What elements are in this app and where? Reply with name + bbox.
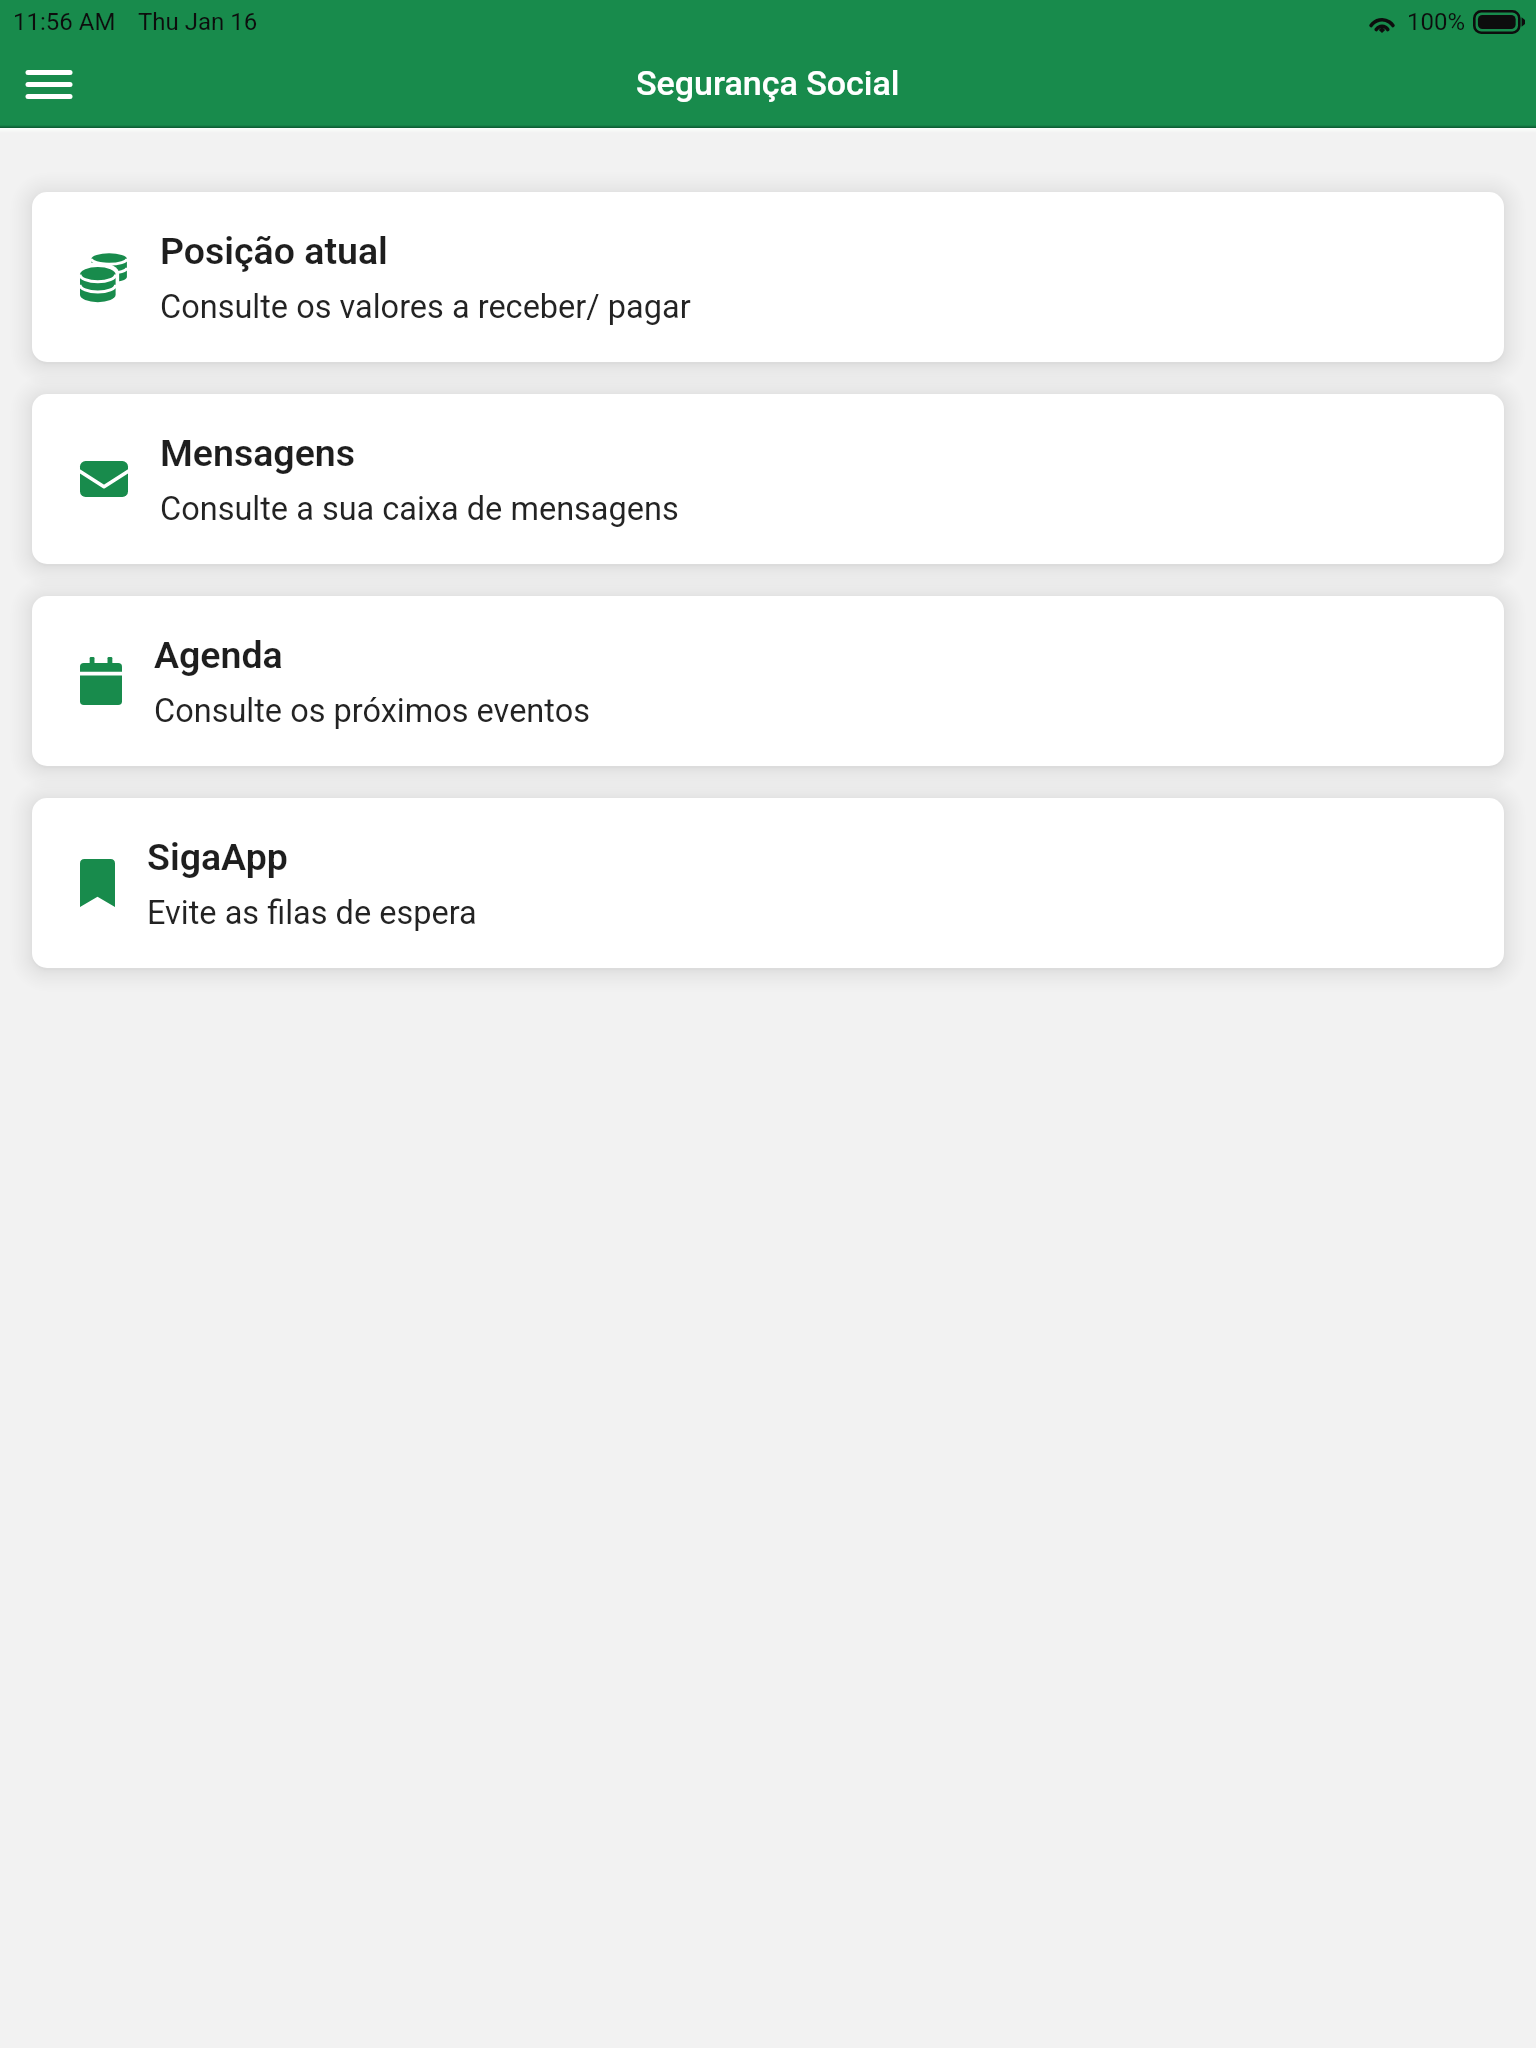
- staticText: Thu Jan 16: [138, 8, 258, 36]
- button[interactable]: Agenda: [32, 596, 1504, 766]
- staticText: Mensagens: [160, 431, 356, 475]
- staticText: 100%: [1407, 8, 1466, 36]
- button[interactable]: Posição atual: [32, 192, 1504, 362]
- button[interactable]: SigaApp: [32, 798, 1504, 968]
- staticText: Posição atual: [160, 229, 388, 273]
- staticText: 11:56 AM: [13, 8, 116, 36]
- button[interactable]: Open navigation menu: [0, 44, 98, 125]
- staticText: Agenda: [154, 633, 283, 677]
- staticText: Evite as filas de espera: [147, 894, 477, 932]
- staticText: Consulte os próximos eventos: [154, 692, 590, 730]
- button[interactable]: Mensagens: [32, 394, 1504, 564]
- staticText: Segurança Social: [636, 63, 900, 103]
- staticText: SigaApp: [147, 835, 288, 879]
- staticText: Consulte a sua caixa de mensagens: [160, 490, 679, 528]
- staticText: Consulte os valores a receber/ pagar: [160, 288, 691, 326]
